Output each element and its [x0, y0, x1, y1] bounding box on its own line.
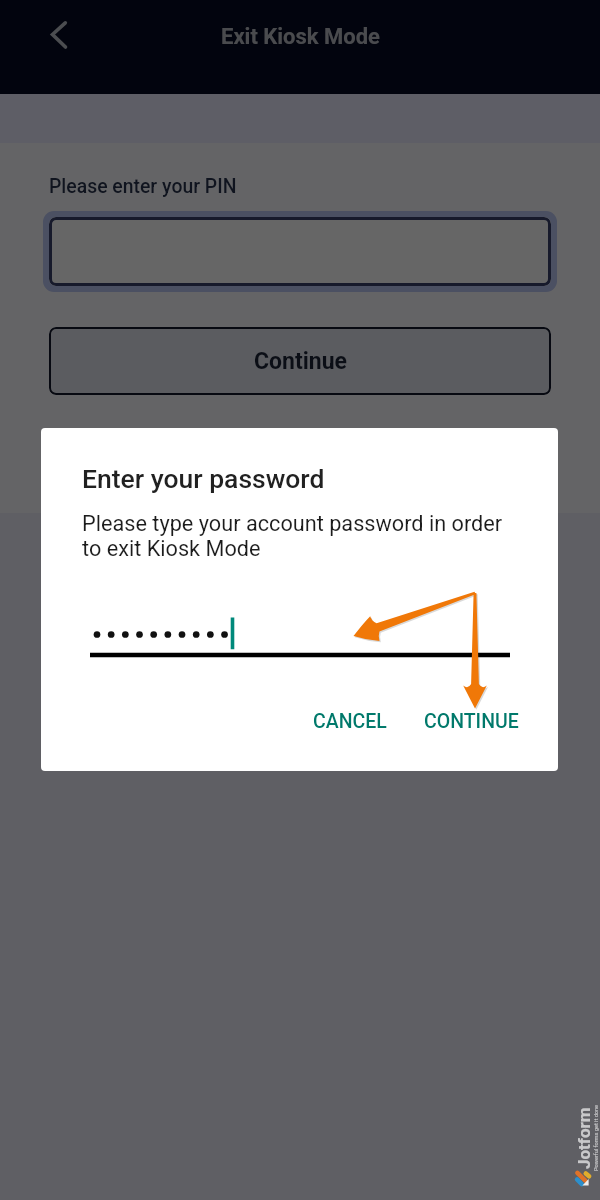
staticText: Enter your password	[82, 463, 325, 494]
staticText: Jotform	[574, 1107, 594, 1169]
button[interactable]: Back	[34, 11, 82, 59]
staticText: CONTINUE	[424, 710, 519, 733]
staticText: Powerful forms get it done	[593, 1104, 600, 1171]
button[interactable]: CANCEL	[305, 702, 395, 741]
staticText: Exit Kiosk Mode	[221, 24, 380, 50]
button[interactable]: Continue	[49, 327, 551, 395]
button[interactable]: CONTINUE	[416, 702, 527, 741]
staticText: Continue	[254, 348, 347, 375]
staticText: CANCEL	[313, 710, 387, 733]
staticText: Please enter your PIN	[49, 175, 237, 198]
staticText: Please type your account password in ord…	[82, 511, 503, 561]
button[interactable]	[49, 217, 551, 286]
